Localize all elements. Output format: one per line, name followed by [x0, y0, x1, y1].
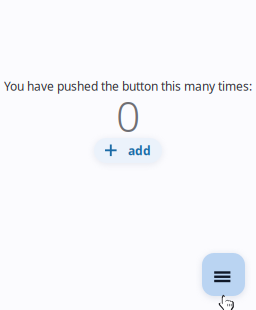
button[interactable]: add: [94, 138, 162, 163]
button[interactable]: Menu: [202, 253, 245, 296]
staticText: You have pushed the button this many tim…: [4, 78, 252, 94]
staticText: add: [128, 142, 151, 158]
staticText: 0: [116, 87, 140, 144]
